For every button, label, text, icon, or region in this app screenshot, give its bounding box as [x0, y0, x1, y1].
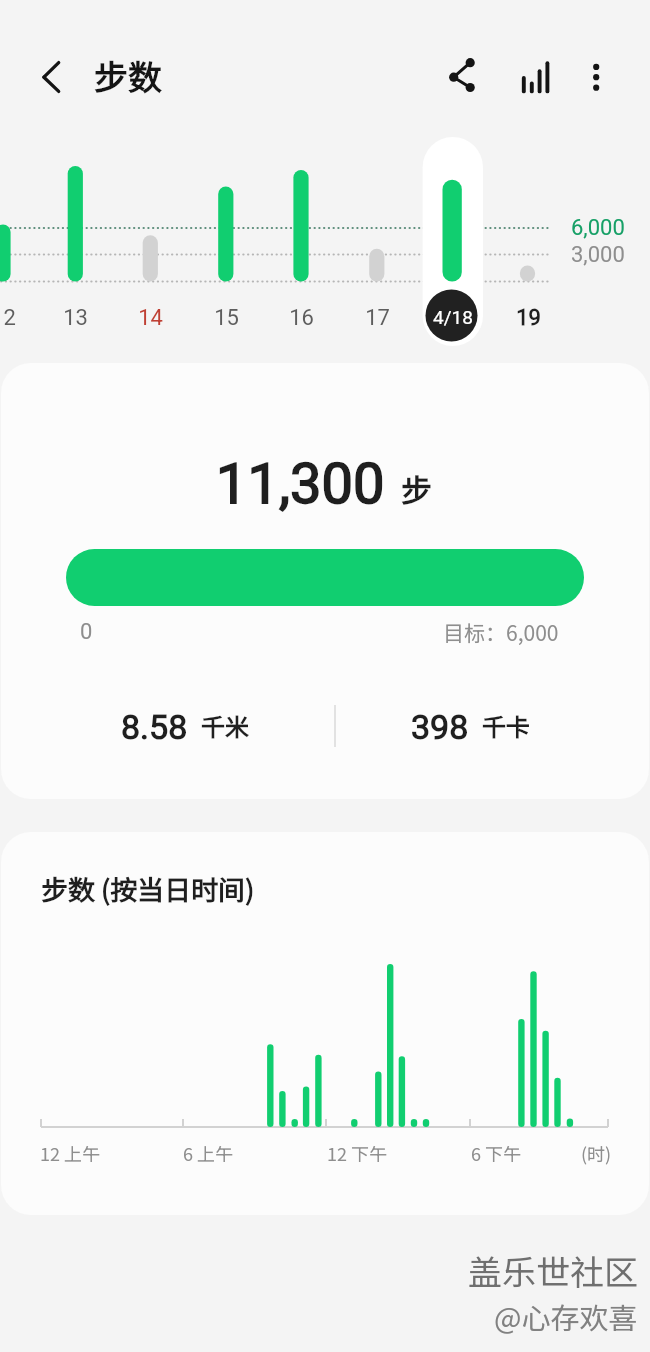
staticText: 步数 (按当日时间) [41, 869, 255, 908]
staticText: 16 [289, 305, 314, 331]
staticText: 6 上午 [183, 1140, 234, 1166]
staticText: 步数 [94, 51, 162, 100]
button[interactable] [1, 832, 649, 1215]
staticText: 13 [63, 305, 88, 331]
button[interactable]: 步数 [94, 51, 162, 100]
button[interactable]: Statistics [512, 50, 568, 106]
staticText: 6 下午 [471, 1140, 522, 1166]
staticText: 千米 [201, 708, 249, 743]
staticText: 0 [80, 619, 93, 645]
staticText: 8.58 [121, 707, 188, 747]
staticText: 14 [138, 305, 163, 331]
button[interactable]: Back [22, 50, 78, 106]
button[interactable] [1, 363, 649, 799]
staticText: 15 [214, 305, 239, 331]
staticText: 目标：6,000 [443, 617, 559, 647]
staticText: 19 [516, 305, 541, 331]
staticText: 4/18 [433, 306, 473, 328]
staticText: 12 [0, 305, 16, 331]
staticText: 6,000 [571, 215, 625, 241]
staticText: 盖乐世社区 [468, 1246, 638, 1295]
staticText: 千卡 [482, 708, 530, 743]
staticText: @心存欢喜 [494, 1295, 638, 1337]
staticText: 3,000 [571, 242, 625, 268]
button[interactable] [66, 549, 584, 606]
button[interactable]: More options [568, 50, 624, 106]
staticText: 12 上午 [40, 1140, 101, 1166]
staticText: 步 [401, 466, 432, 511]
staticText: 12 下午 [327, 1140, 388, 1166]
staticText: 17 [365, 305, 390, 331]
button[interactable]: Share [440, 50, 496, 106]
staticText: (时) [581, 1140, 612, 1166]
staticText: 398 [411, 707, 469, 747]
staticText: 11,300 [216, 451, 385, 517]
